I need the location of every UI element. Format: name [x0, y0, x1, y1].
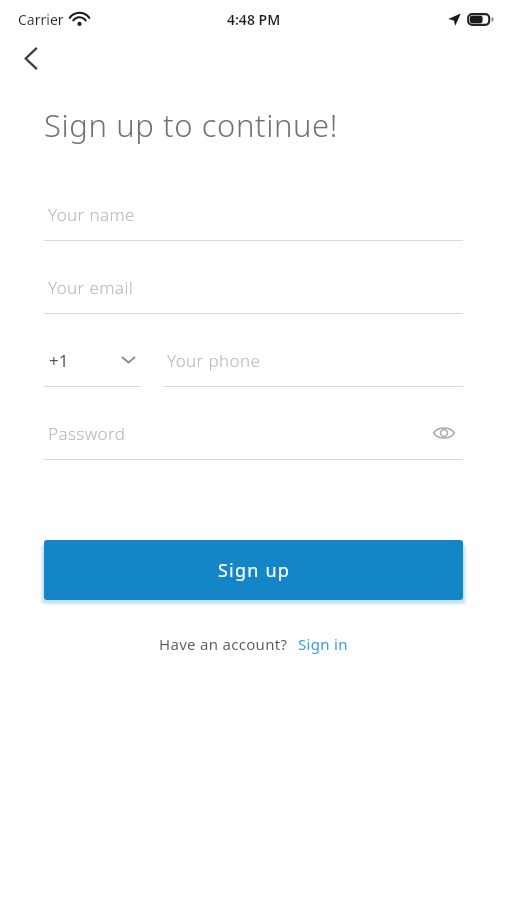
staticText: Sign up: [218, 558, 290, 583]
staticText: Sign up to continue!: [44, 104, 339, 146]
staticText: Carrier: [18, 10, 64, 29]
staticText: +1: [49, 349, 69, 372]
button[interactable]: Your name: [44, 188, 463, 240]
button[interactable]: Sign in: [298, 634, 348, 654]
staticText: Your name: [48, 203, 135, 226]
button[interactable]: Back: [8, 35, 54, 81]
staticText: Your phone: [167, 349, 261, 372]
staticText: 4:48 PM: [227, 10, 281, 29]
staticText: Your email: [48, 276, 134, 299]
staticText: Password: [48, 422, 126, 445]
staticText: Sign in: [298, 634, 348, 654]
staticText: Have an account?: [159, 634, 288, 654]
button[interactable]: Show password: [425, 414, 463, 452]
button[interactable]: Sign up: [44, 540, 463, 600]
button[interactable]: Password: [44, 407, 463, 459]
button[interactable]: Your phone: [163, 334, 463, 386]
button[interactable]: Your email: [44, 261, 463, 313]
button[interactable]: +1: [44, 334, 141, 386]
